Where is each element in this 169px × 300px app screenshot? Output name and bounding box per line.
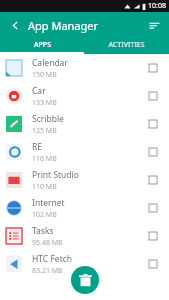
- button[interactable]: Select Tasks: [145, 228, 161, 244]
- button[interactable]: Back: [6, 16, 24, 34]
- button[interactable]: Select Car: [145, 88, 161, 104]
- button[interactable]: Internet: [0, 194, 169, 222]
- button[interactable]: Tasks: [0, 222, 169, 250]
- staticText: HTC Fetch: [32, 253, 73, 265]
- staticText: App Manager: [28, 18, 99, 33]
- button[interactable]: Print Studio: [0, 166, 169, 194]
- staticText: 102 MB: [32, 210, 57, 220]
- button[interactable]: Sort: [145, 16, 163, 34]
- staticText: 133 MB: [32, 98, 57, 108]
- button[interactable]: Select Print Studio: [145, 172, 161, 188]
- staticText: Car: [32, 85, 46, 97]
- staticText: 110 MB: [32, 182, 57, 192]
- staticText: Print Studio: [32, 169, 79, 181]
- staticText: 83.21 MB: [32, 266, 63, 276]
- button[interactable]: Select Calendar: [145, 60, 161, 76]
- staticText: Internet: [32, 197, 65, 209]
- button[interactable]: ACTIVITIES: [84, 38, 169, 52]
- staticText: APPS: [34, 40, 51, 50]
- staticText: Scribble: [32, 113, 64, 125]
- button[interactable]: Car: [0, 82, 169, 110]
- button[interactable]: APPS: [0, 38, 84, 52]
- staticText: 116 MB: [32, 154, 57, 164]
- button[interactable]: Select RE: [145, 144, 161, 160]
- staticText: Tasks: [32, 225, 54, 237]
- staticText: RE: [32, 141, 43, 153]
- staticText: ACTIVITIES: [108, 40, 145, 50]
- button[interactable]: Select Scribble: [145, 116, 161, 132]
- button[interactable]: Delete selected apps: [71, 266, 99, 294]
- staticText: 150 MB: [32, 70, 57, 80]
- staticText: 95.48 MB: [32, 238, 63, 248]
- button[interactable]: Scribble: [0, 110, 169, 138]
- button[interactable]: Calendar: [0, 54, 169, 82]
- button[interactable]: Select Internet: [145, 200, 161, 216]
- button[interactable]: Select HTC Fetch: [145, 256, 161, 272]
- button[interactable]: RE: [0, 138, 169, 166]
- staticText: 125 MB: [32, 126, 57, 136]
- button[interactable]: HTC Fetch: [0, 250, 169, 278]
- staticText: 10:08: [148, 1, 166, 11]
- staticText: Calendar: [32, 57, 68, 69]
